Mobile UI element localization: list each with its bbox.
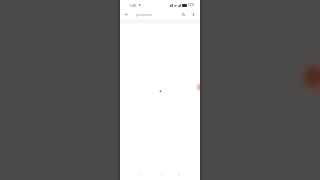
staticText: jio cinema [136, 12, 152, 16]
button[interactable]: Search [178, 9, 189, 19]
staticText: 1:48 [129, 3, 136, 8]
staticText: 57% [188, 3, 195, 7]
button[interactable]: Back [120, 9, 132, 19]
button[interactable]: Voice search [189, 9, 198, 19]
